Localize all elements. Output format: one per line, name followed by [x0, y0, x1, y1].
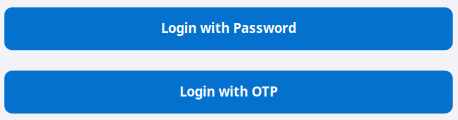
staticText: Login with OTP: [180, 82, 278, 100]
button[interactable]: Login with Password: [4, 7, 453, 50]
staticText: Login with Password: [161, 19, 296, 37]
button[interactable]: Login with OTP: [4, 71, 453, 113]
